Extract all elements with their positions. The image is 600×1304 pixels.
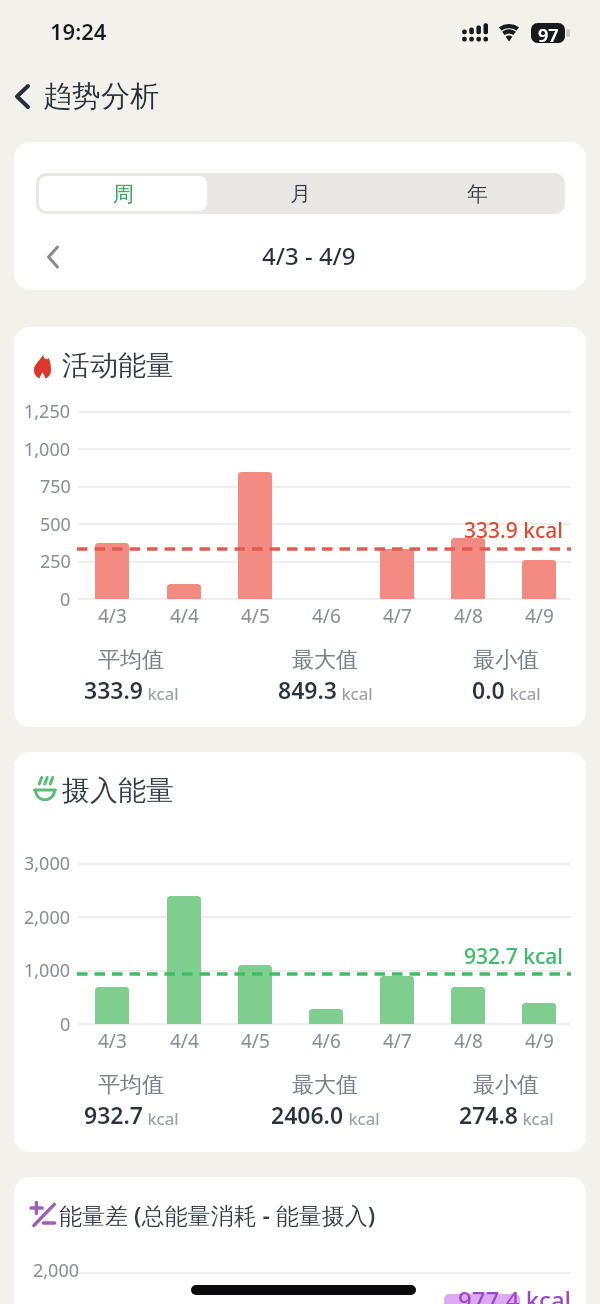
button[interactable]: 年 (389, 173, 565, 214)
staticText: kcal (505, 682, 541, 705)
staticText: 2406.0 (271, 1099, 344, 1130)
staticText: 4/8 (454, 1028, 483, 1054)
staticText: 2,000 (33, 1258, 80, 1283)
button[interactable] (14, 84, 31, 109)
staticText: 4/5 (241, 1028, 270, 1054)
staticText: 4/9 (525, 603, 554, 629)
staticText: 周 (113, 181, 134, 207)
staticText: 2,000 (24, 905, 71, 930)
staticText: 1,000 (24, 437, 71, 462)
staticText: 97 (538, 23, 559, 43)
staticText: 274.8 (459, 1099, 518, 1130)
staticText: kcal (143, 1107, 179, 1130)
staticText: 19:24 (50, 16, 107, 46)
staticText: 849.3 (278, 674, 337, 705)
staticText: 333.9 (84, 674, 143, 705)
staticText: 1,000 (24, 958, 71, 983)
staticText: 最大值 (292, 1071, 358, 1099)
staticText: 趋势分析 (43, 78, 159, 115)
button[interactable]: 月 (212, 173, 388, 214)
staticText: 0 (60, 587, 71, 612)
staticText: 摄入能量 (62, 773, 174, 808)
staticText: 3,000 (24, 851, 71, 876)
staticText: 750 (40, 474, 71, 499)
staticText: 4/7 (383, 603, 412, 629)
staticText: 最小值 (473, 646, 539, 674)
staticText: 4/5 (241, 603, 270, 629)
staticText: 250 (40, 549, 71, 574)
staticText: 4/4 (170, 1028, 199, 1054)
staticText: kcal (518, 1107, 554, 1130)
staticText: 500 (40, 512, 71, 537)
staticText: 4/3 (98, 603, 127, 629)
staticText: 977.4 kcal (458, 1283, 572, 1304)
staticText: 4/3 (98, 1028, 127, 1054)
staticText: 平均值 (98, 1071, 164, 1099)
staticText: 4/7 (383, 1028, 412, 1054)
staticText: 4/6 (312, 1028, 341, 1054)
staticText: 最大值 (292, 646, 358, 674)
staticText: kcal (337, 682, 373, 705)
staticText: 月 (290, 181, 311, 207)
staticText: 4/8 (454, 603, 483, 629)
staticText: 0.0 (472, 674, 505, 705)
staticText: 4/3 - 4/9 (262, 239, 356, 272)
staticText: 932.7 (84, 1099, 143, 1130)
button[interactable]: 周 (39, 176, 207, 211)
staticText: 年 (467, 181, 488, 207)
staticText: 4/9 (525, 1028, 554, 1054)
button[interactable] (46, 245, 60, 269)
staticText: kcal (344, 1107, 380, 1130)
staticText: 活动能量 (62, 348, 174, 383)
staticText: 能量差 (总能量消耗 - 能量摄入) (59, 1199, 376, 1230)
staticText: 4/4 (170, 603, 199, 629)
staticText: 平均值 (98, 646, 164, 674)
staticText: 333.9 kcal (464, 516, 563, 545)
staticText: 1,250 (24, 399, 71, 424)
staticText: 0 (60, 1012, 71, 1037)
staticText: 最小值 (473, 1071, 539, 1099)
staticText: kcal (143, 682, 179, 705)
staticText: 932.7 kcal (464, 942, 563, 971)
staticText: 4/6 (312, 603, 341, 629)
